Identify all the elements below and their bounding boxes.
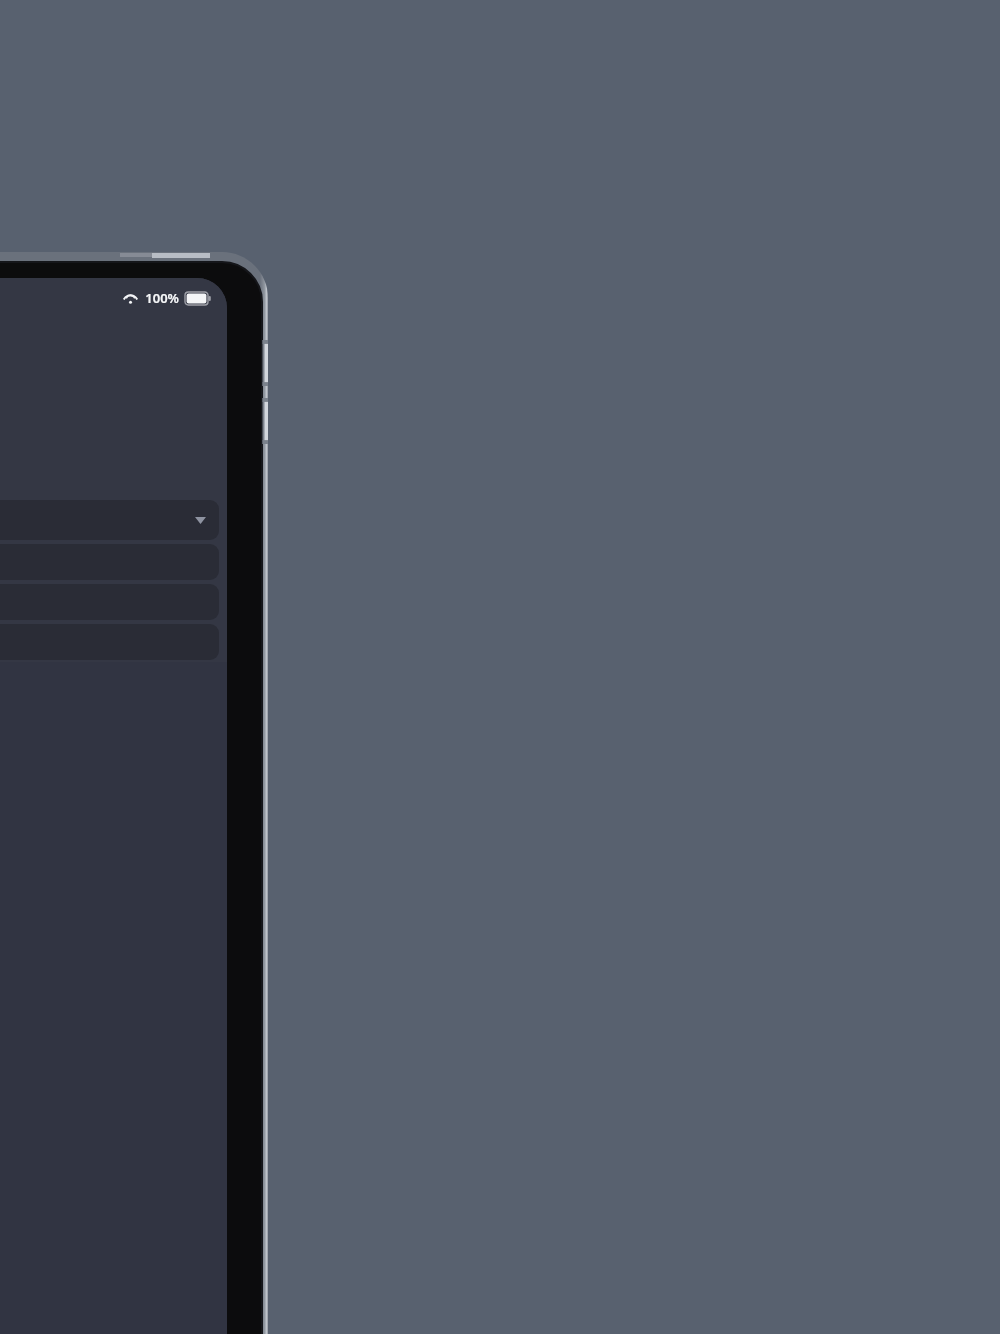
staticText: 100% [145,289,179,307]
button[interactable]: Expand dropdown [191,511,209,529]
button[interactable]: Filter [0,500,219,540]
